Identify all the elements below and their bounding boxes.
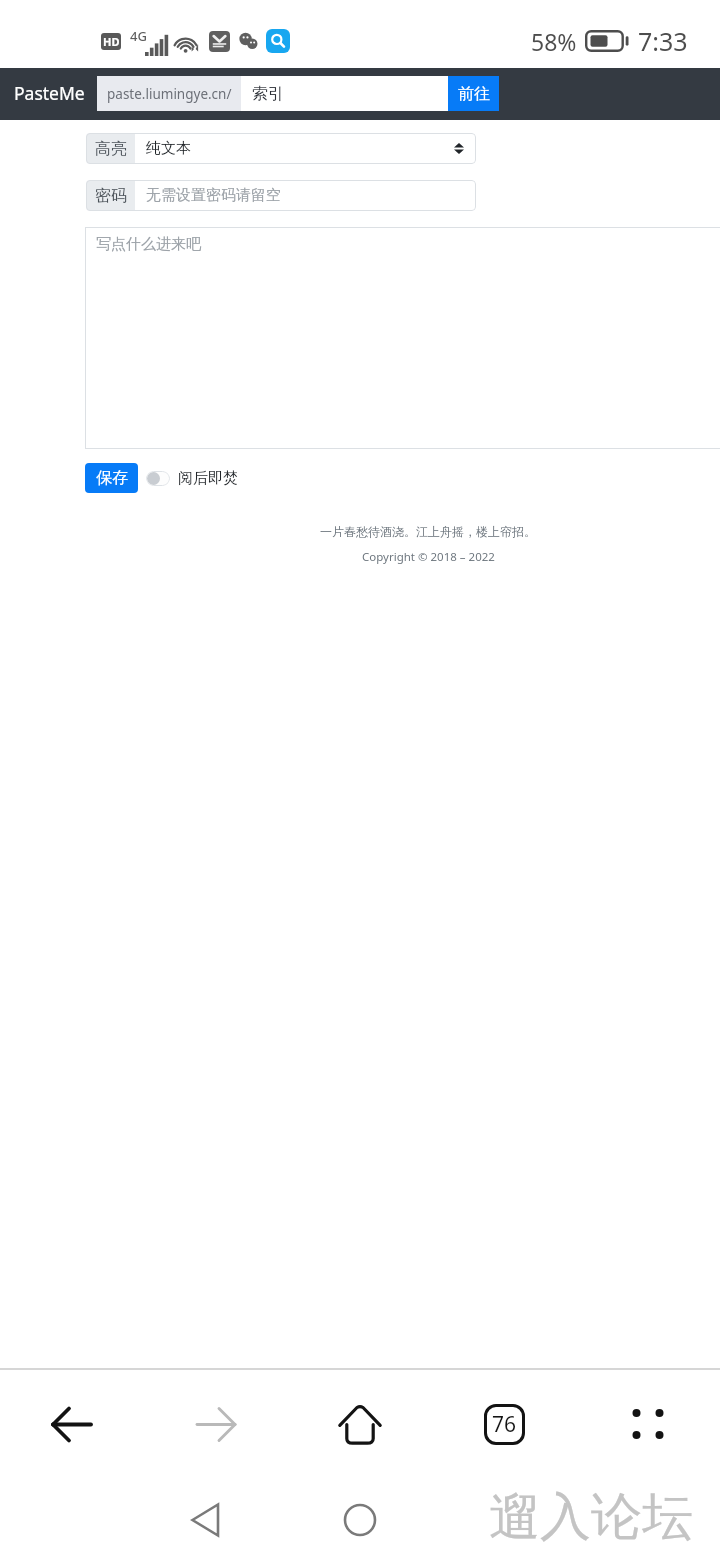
staticText: 阅后即焚 — [178, 469, 238, 488]
staticText: Copyright © 2018 – 2022 — [362, 549, 495, 565]
staticText: 保存 — [96, 468, 128, 488]
staticText: 一片春愁待酒浇。江上舟摇，楼上帘招。 — [320, 524, 536, 539]
button[interactable]: Menu — [576, 1376, 720, 1472]
staticText: 写点什么进来吧 — [96, 235, 201, 254]
staticText: 高亮 — [95, 139, 127, 159]
staticText: HD — [103, 34, 120, 49]
button[interactable]: 索引 — [241, 76, 448, 111]
button[interactable] — [146, 471, 170, 486]
button[interactable]: Forward — [144, 1376, 288, 1472]
button[interactable]: 保存 — [85, 463, 138, 493]
staticText: 纯文本 — [146, 139, 191, 158]
button[interactable]: 密码 — [86, 180, 476, 211]
button[interactable]: Tabs — [432, 1376, 576, 1472]
staticText: 无需设置密码请留空 — [146, 186, 281, 205]
staticText: paste.liumingye.cn/ — [107, 85, 232, 103]
button[interactable]: 前往 — [448, 76, 499, 111]
staticText: 4G — [130, 27, 147, 45]
staticText: 前往 — [458, 84, 490, 104]
button[interactable]: 高亮 — [86, 133, 476, 164]
button[interactable]: PasteMe — [14, 81, 85, 105]
button[interactable]: Home — [320, 1480, 400, 1560]
button[interactable]: Home — [288, 1376, 432, 1472]
staticText: 7:33 — [638, 24, 688, 58]
staticText: 遛入论坛 — [489, 1485, 693, 1549]
button[interactable]: Back — [0, 1376, 144, 1472]
button[interactable]: Back — [165, 1480, 245, 1560]
staticText: 密码 — [95, 186, 127, 206]
button[interactable]: paste.liumingye.cn/ — [97, 76, 241, 111]
button[interactable]: 写点什么进来吧 — [85, 227, 720, 449]
staticText: 76 — [492, 1410, 517, 1439]
staticText: 索引 — [252, 84, 284, 104]
staticText: 58% — [531, 26, 577, 57]
